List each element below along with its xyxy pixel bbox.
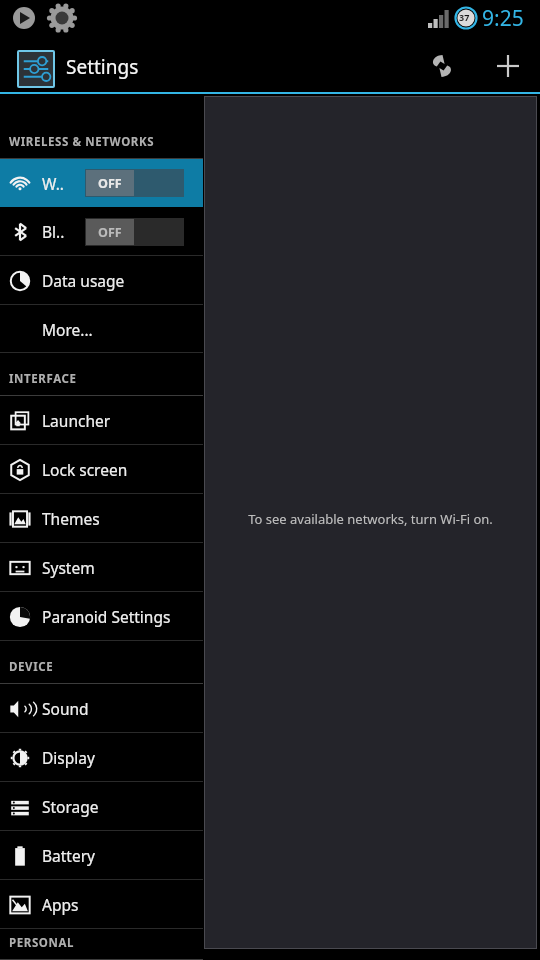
staticText: INTERFACE xyxy=(9,371,77,387)
button[interactable]: Launcher xyxy=(0,396,203,445)
staticText: Battery xyxy=(42,845,96,866)
button[interactable]: Toggle OFF xyxy=(85,169,184,197)
staticText: Lock screen xyxy=(42,459,128,480)
button[interactable]: System xyxy=(0,543,203,592)
button[interactable]: Sync xyxy=(418,42,466,90)
button[interactable]: More... xyxy=(0,305,203,353)
staticText: OFF xyxy=(98,224,122,241)
button[interactable]: Settings icon xyxy=(19,52,53,86)
staticText: System xyxy=(42,557,95,578)
button[interactable]: Bl.. xyxy=(0,207,203,256)
staticText: More... xyxy=(42,319,93,340)
staticText: W.. xyxy=(42,173,64,194)
staticText: Themes xyxy=(42,508,100,529)
button[interactable]: Apps xyxy=(0,880,203,929)
button[interactable]: Add xyxy=(484,42,532,90)
staticText: Bl.. xyxy=(42,221,65,242)
staticText: Apps xyxy=(42,894,79,915)
staticText: Settings xyxy=(66,54,139,80)
button[interactable]: Lock screen xyxy=(0,445,203,494)
staticText: Paranoid Settings xyxy=(42,606,171,627)
button[interactable]: Sound xyxy=(0,684,203,733)
staticText: Data usage xyxy=(42,270,125,291)
staticText: Storage xyxy=(42,796,99,817)
button[interactable]: Display xyxy=(0,733,203,782)
staticText: WIRELESS & NETWORKS xyxy=(9,134,155,150)
staticText: 37 xyxy=(459,11,470,23)
staticText: OFF xyxy=(98,175,122,192)
staticText: To see available networks, turn Wi-Fi on… xyxy=(248,510,493,528)
staticText: Launcher xyxy=(42,410,111,431)
staticText: PERSONAL xyxy=(9,935,75,951)
staticText: Sound xyxy=(42,698,89,719)
button[interactable]: Toggle OFF xyxy=(85,218,184,246)
button[interactable]: W.. xyxy=(0,159,203,207)
button[interactable]: Paranoid Settings xyxy=(0,592,203,641)
button[interactable]: Battery xyxy=(0,831,203,880)
button[interactable]: Storage xyxy=(0,782,203,831)
staticText: DEVICE xyxy=(9,659,54,675)
button[interactable]: Data usage xyxy=(0,256,203,305)
button[interactable]: Themes xyxy=(0,494,203,543)
staticText: Display xyxy=(42,747,95,768)
staticText: 9:25 xyxy=(482,4,524,33)
